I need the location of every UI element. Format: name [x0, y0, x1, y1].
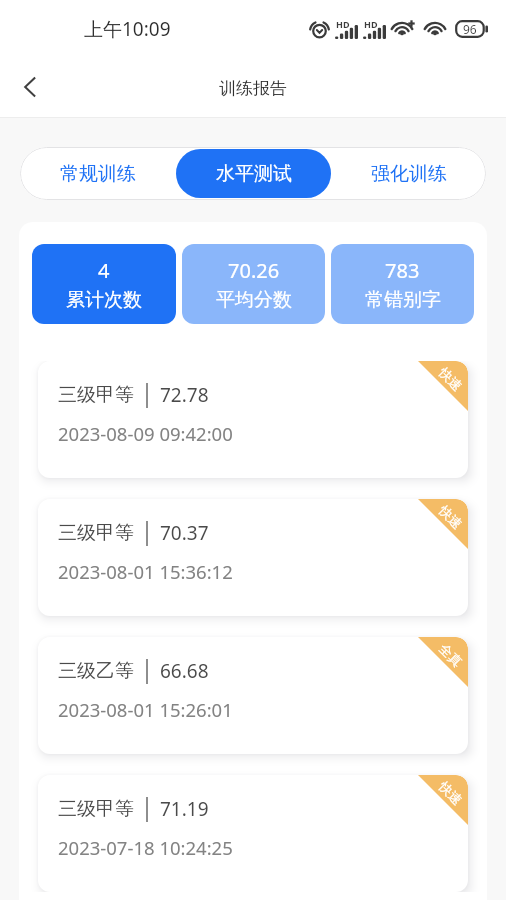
staticText: 水平测试: [216, 162, 292, 186]
staticText: 2023-07-18 10:24:25: [58, 835, 233, 860]
staticText: 累计次数: [66, 288, 142, 312]
staticText: 70.26: [228, 257, 280, 284]
staticText: 训练报告: [219, 78, 287, 99]
staticText: 72.78: [160, 382, 209, 408]
staticText: 快速: [436, 502, 466, 532]
button[interactable]: 水平测试: [176, 149, 331, 198]
button[interactable]: 三级甲等: [38, 775, 468, 892]
staticText: 三级甲等: [58, 383, 134, 407]
staticText: 4: [98, 257, 110, 284]
staticText: HD: [364, 18, 378, 30]
staticText: 71.19: [160, 796, 209, 822]
staticText: 平均分数: [216, 288, 292, 312]
staticText: 70.37: [160, 520, 209, 546]
staticText: 96: [463, 21, 477, 37]
button[interactable]: 4: [32, 244, 176, 324]
staticText: 2023-08-09 09:42:00: [58, 421, 233, 446]
button[interactable]: 三级甲等: [38, 361, 468, 478]
staticText: 三级乙等: [58, 659, 134, 683]
button[interactable]: Back: [9, 66, 51, 108]
button[interactable]: 常规训练: [20, 149, 176, 198]
staticText: 常规训练: [60, 162, 136, 186]
staticText: 2023-08-01 15:26:01: [58, 697, 233, 722]
staticText: 快速: [436, 778, 466, 808]
staticText: 66.68: [160, 658, 209, 684]
button[interactable]: 三级乙等: [38, 637, 468, 754]
staticText: 783: [385, 257, 420, 284]
staticText: 常错别字: [365, 288, 441, 312]
button[interactable]: 783: [331, 244, 474, 324]
staticText: HD: [336, 18, 350, 30]
staticText: 三级甲等: [58, 797, 134, 821]
button[interactable]: 强化训练: [331, 149, 486, 198]
button[interactable]: 70.26: [182, 244, 325, 324]
staticText: 强化训练: [371, 162, 447, 186]
button[interactable]: 三级甲等: [38, 499, 468, 616]
staticText: 上午10:09: [84, 16, 171, 42]
staticText: 2023-08-01 15:36:12: [58, 559, 233, 584]
staticText: 快速: [436, 364, 466, 394]
staticText: 全真: [436, 640, 466, 670]
staticText: 三级甲等: [58, 521, 134, 545]
